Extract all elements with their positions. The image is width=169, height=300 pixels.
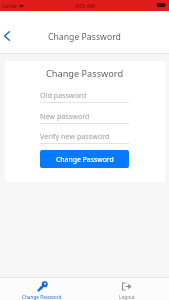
staticText: Change Password [48,31,121,43]
button[interactable]: Logout [84,278,169,300]
staticText: Carrier [2,3,18,9]
button[interactable]: Change Password [40,150,129,168]
staticText: Logout [119,294,135,300]
staticText: Change Password [46,67,124,80]
staticText: Change Password [56,155,114,164]
staticText: New password [40,111,90,121]
button[interactable]: Change Password [0,278,84,300]
staticText: 3:05 AM [75,2,95,9]
staticText: Old password [40,90,87,100]
staticText: Change Password [22,294,62,300]
button[interactable]: Back [0,26,18,46]
staticText: Verify new password [40,131,110,141]
